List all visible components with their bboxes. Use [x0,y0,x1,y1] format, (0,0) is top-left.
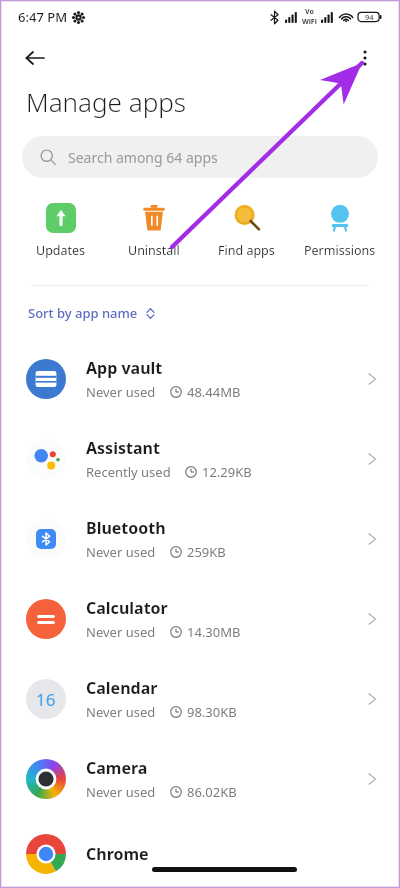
staticText: Manage apps [26,84,186,119]
staticText: Updates [36,242,86,259]
staticText: Bluetooth [86,517,166,539]
staticText: Never used [86,383,156,401]
staticText: 6:47 PM [18,8,68,26]
staticText: Never used [86,543,156,561]
staticText: 98.30KB [187,703,237,721]
staticText: Find apps [218,242,275,259]
staticText: 12.29KB [202,463,252,481]
button[interactable]: Back [14,37,56,79]
staticText: 48.44MB [187,383,241,401]
staticText: 94 [365,12,374,22]
staticText: Recently used [86,463,171,481]
button[interactable]: Search among 64 apps [22,136,378,178]
staticText: 16 [36,688,56,711]
button[interactable]: Camera [0,739,400,819]
staticText: Calculator [86,597,168,619]
button[interactable]: Sort by app name [26,301,158,325]
button[interactable]: Calculator [0,579,400,659]
button[interactable]: More options [344,37,386,79]
staticText: 86.02KB [187,783,237,801]
staticText: WiFi [302,17,317,27]
staticText: 14.30MB [187,623,241,641]
staticText: Assistant [86,437,160,459]
staticText: Never used [86,703,156,721]
staticText: Calendar [86,677,158,699]
button[interactable]: Uninstall [107,198,200,263]
button[interactable]: Bluetooth [0,499,400,579]
button[interactable]: Updates [14,198,107,263]
staticText: Camera [86,757,148,779]
button[interactable]: 16 [0,659,400,739]
staticText: App vault [86,357,163,379]
button[interactable]: App vault [0,339,400,419]
staticText: Chrome [86,843,149,865]
staticText: Permissions [304,242,376,259]
button[interactable]: Chrome [0,819,400,888]
button[interactable]: Permissions [293,198,386,263]
button[interactable]: Find apps [200,198,293,263]
staticText: Sort by app name [28,304,138,322]
staticText: Uninstall [128,242,180,259]
staticText: Search among 64 apps [68,148,218,167]
staticText: Never used [86,623,156,641]
staticText: 259KB [187,543,226,561]
staticText: Vo [305,7,314,17]
button[interactable]: Assistant [0,419,400,499]
staticText: Never used [86,783,156,801]
